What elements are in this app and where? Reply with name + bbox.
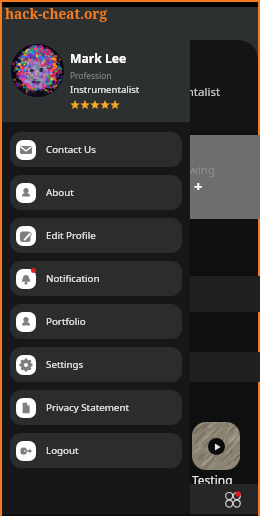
button[interactable]: Settings bbox=[10, 347, 182, 382]
staticText: Contact Us bbox=[46, 143, 96, 156]
staticText: hack-cheat.org bbox=[5, 4, 107, 23]
button[interactable]: Privacy Statement bbox=[10, 390, 182, 425]
button[interactable]: Notification bbox=[10, 261, 182, 296]
staticText: Instrumentalist bbox=[70, 83, 140, 96]
staticText: Mark Lee bbox=[70, 50, 127, 67]
staticText: Privacy Statement bbox=[46, 401, 129, 414]
staticText: About bbox=[46, 186, 74, 199]
button[interactable]: Logout bbox=[10, 433, 182, 468]
staticText: Portfolio bbox=[46, 315, 86, 328]
button[interactable]: Apps bbox=[222, 488, 244, 510]
button[interactable]: Contact Us bbox=[10, 132, 182, 167]
staticText: + bbox=[194, 176, 203, 196]
staticText: Settings bbox=[46, 358, 84, 371]
button[interactable]: Edit Profile bbox=[10, 218, 182, 253]
button[interactable]: Portfolio bbox=[10, 304, 182, 339]
staticText: Edit Profile bbox=[46, 229, 96, 242]
staticText: Logout bbox=[46, 444, 79, 457]
staticText: Notification bbox=[46, 272, 100, 285]
staticText: Testing bbox=[192, 472, 233, 488]
staticText: Instrumentalist bbox=[137, 84, 221, 100]
staticText: Now showing bbox=[142, 162, 216, 178]
staticText: Profession bbox=[70, 70, 112, 81]
button[interactable]: About bbox=[10, 175, 182, 210]
